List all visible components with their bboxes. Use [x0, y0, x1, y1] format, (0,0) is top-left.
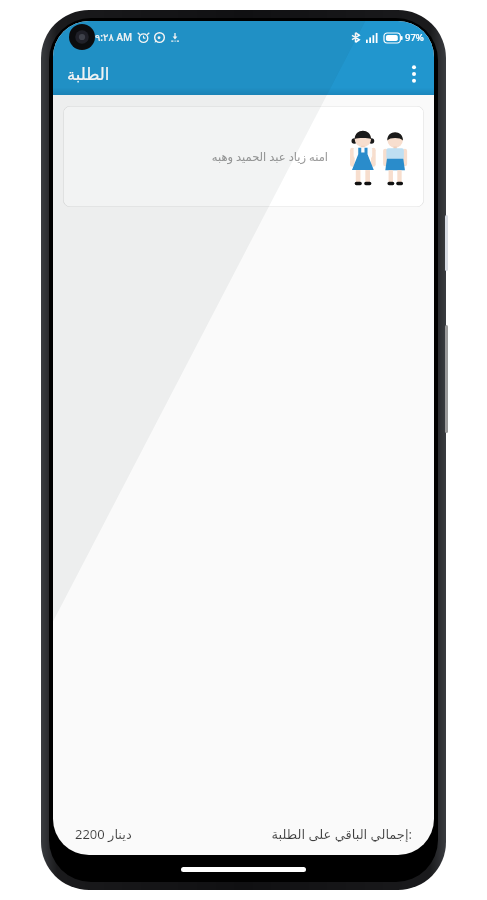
staticText: إجمالي الباقي على الطلبة:: [271, 825, 412, 843]
staticText: امنه زياد عبد الحميد وهبه: [211, 149, 328, 165]
other: Students: [348, 128, 410, 186]
staticText: 2200 دينار: [75, 825, 132, 843]
button[interactable]: امنه زياد عبد الحميد وهبه: [63, 106, 424, 207]
button[interactable]: More options: [394, 53, 434, 95]
staticText: ٩:٢٨ AM: [95, 30, 133, 44]
staticText: 97%: [405, 31, 424, 44]
staticText: الطلبة: [67, 65, 110, 84]
